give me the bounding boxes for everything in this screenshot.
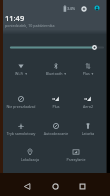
staticText: Nie przeszkadzać xyxy=(5,104,37,109)
button[interactable]: Settings xyxy=(80,5,88,13)
staticText: Aero2 xyxy=(72,104,104,109)
staticText: Plus ▾ xyxy=(72,71,104,76)
button[interactable]: Autoobracanie xyxy=(40,120,72,140)
staticText: 34% xyxy=(67,6,76,12)
staticText: Wi-Fi ▾ xyxy=(5,71,37,76)
button[interactable]: Tryb samolotowy xyxy=(5,120,37,140)
button[interactable]: Recent apps xyxy=(76,180,89,193)
button[interactable]: User account xyxy=(93,4,101,12)
staticText: Bluetooth ▾ xyxy=(40,71,72,76)
button[interactable]: Brightness xyxy=(8,42,106,53)
button[interactable]: Przesyłanie xyxy=(60,146,92,166)
button[interactable]: Latarka xyxy=(72,120,104,140)
button[interactable]: Back xyxy=(21,180,34,193)
staticText: Przesyłanie xyxy=(60,157,92,162)
button[interactable]: Aero2 xyxy=(72,93,104,113)
button[interactable]: Wi-Fi ▾ xyxy=(5,60,37,80)
staticText: Tryb samolotowy xyxy=(5,131,37,136)
staticText: Lokalizacja xyxy=(14,157,46,162)
button[interactable]: Home xyxy=(49,180,62,193)
staticText: Latarka xyxy=(72,131,104,136)
button[interactable]: Lokalizacja xyxy=(14,146,46,166)
button[interactable]: Plus ▾ xyxy=(72,60,104,80)
staticText: poniedziałek, 10 października xyxy=(5,23,55,28)
button[interactable]: Plus xyxy=(40,93,72,113)
staticText: Autoobracanie xyxy=(40,131,72,136)
staticText: 11:49 xyxy=(5,13,25,23)
button[interactable]: Nie przeszkadzać xyxy=(5,93,37,113)
staticText: Plus xyxy=(40,104,72,109)
button[interactable]: Bluetooth ▾ xyxy=(40,60,72,80)
